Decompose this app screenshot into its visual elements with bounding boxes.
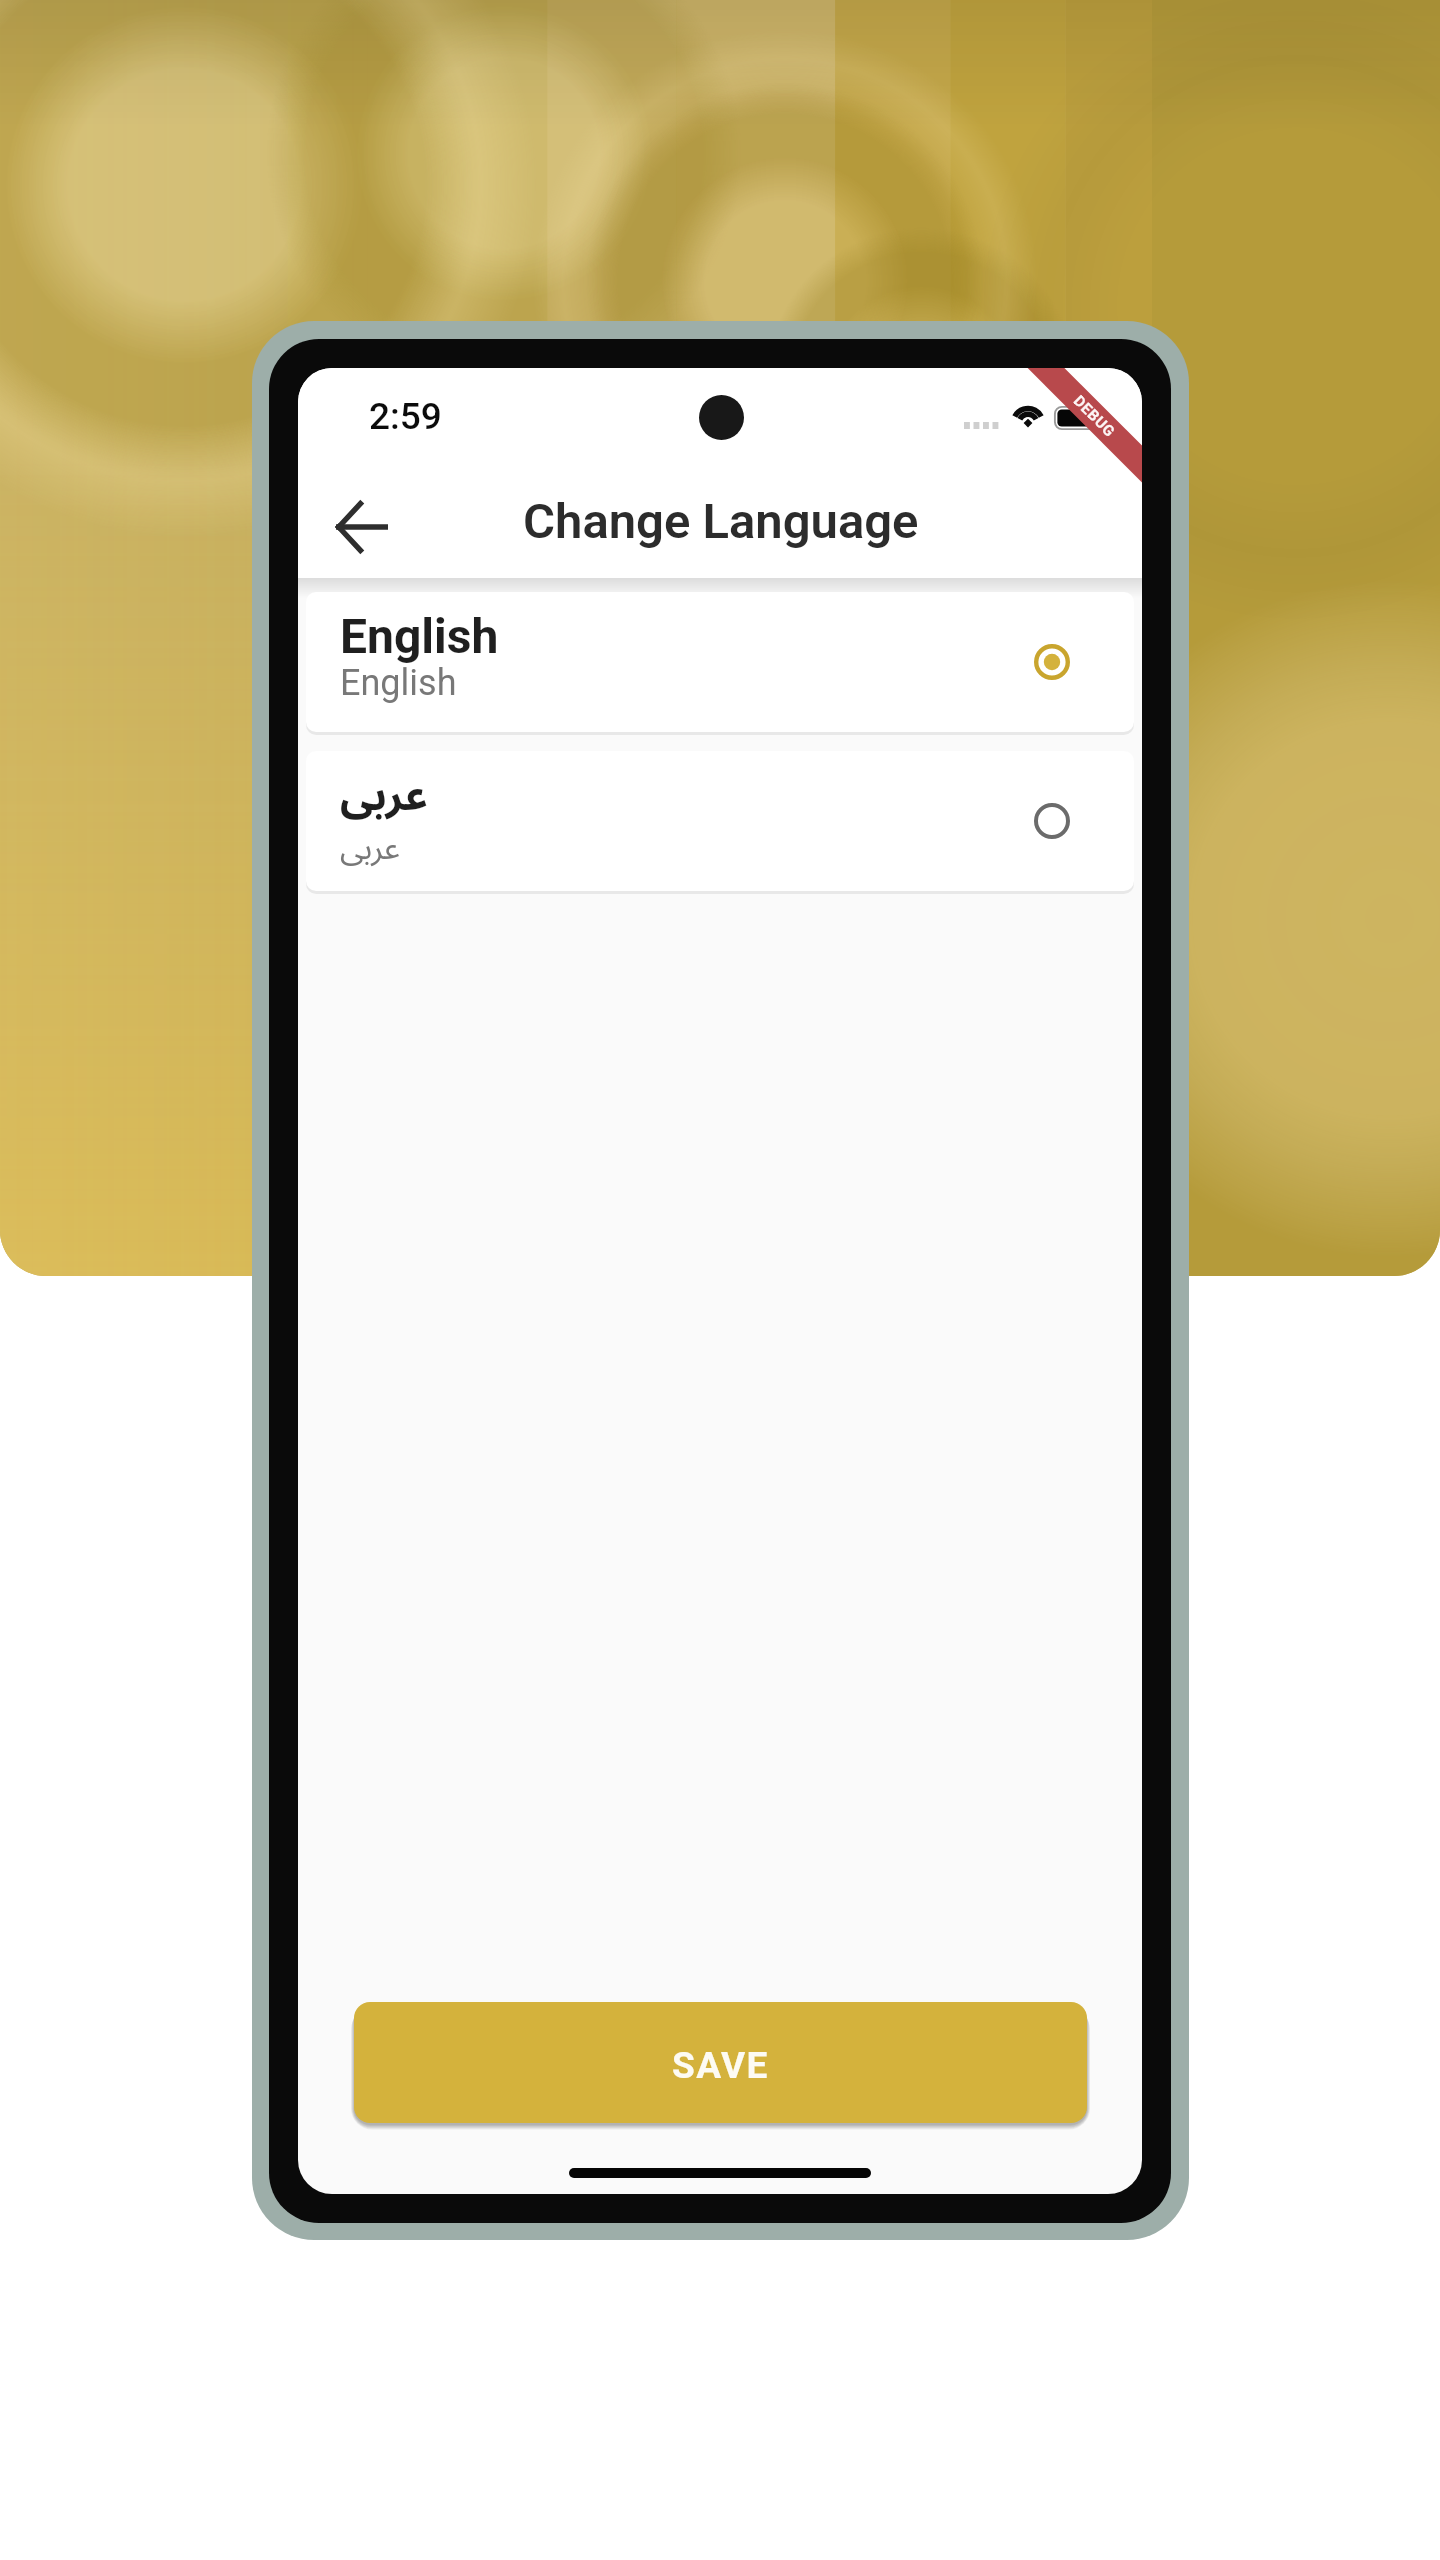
staticText: 2:59	[369, 395, 442, 438]
button[interactable]: Back	[336, 501, 388, 553]
staticText: عربى	[340, 815, 400, 883]
staticText: DEBUG	[1070, 392, 1119, 441]
button[interactable]: English	[306, 592, 1134, 732]
staticText: English	[340, 662, 457, 704]
staticText: SAVE	[672, 2044, 769, 2087]
staticText: عربى	[340, 752, 428, 841]
button[interactable]: SAVE	[354, 2002, 1087, 2123]
button[interactable]: عربى	[306, 751, 1134, 891]
staticText: Change Language	[523, 493, 919, 550]
staticText: English	[340, 608, 499, 664]
